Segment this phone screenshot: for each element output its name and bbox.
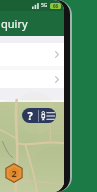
button[interactable]: quiry [0,11,64,36]
staticText: ? [27,108,33,123]
staticText: 2 [11,167,17,179]
other: Open [55,51,59,58]
button[interactable]: Help [22,108,38,123]
staticText: 5G [41,2,48,9]
button[interactable]: Route 2 marker [4,163,24,183]
staticText: 66 [53,3,59,9]
staticText: quiry [1,16,28,31]
button[interactable]: Map legend [39,108,56,123]
button[interactable]: Open [0,43,64,66]
other: Open [55,76,59,83]
button[interactable]: Open [0,70,64,88]
